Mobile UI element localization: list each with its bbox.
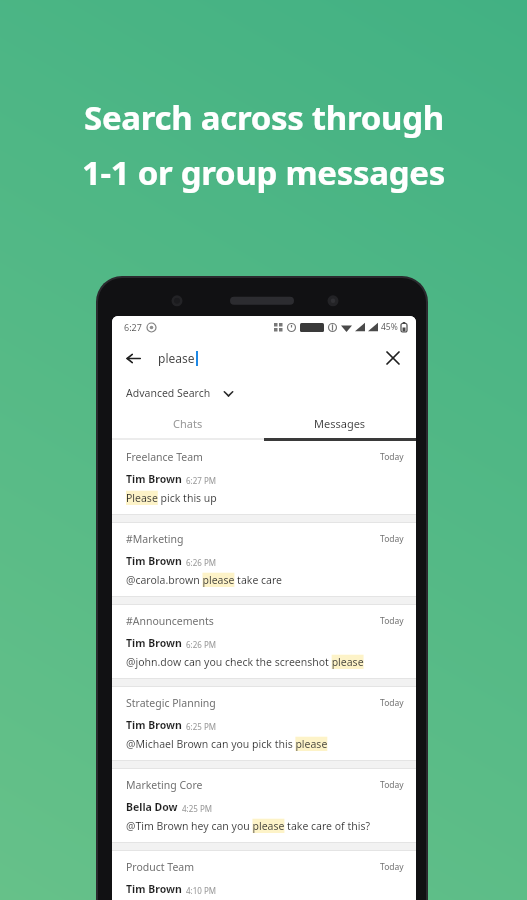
staticText: #Announcements	[126, 614, 214, 628]
staticText: Tim Brown	[126, 554, 182, 568]
staticText: Bella Dow	[126, 800, 178, 814]
staticText: Advanced Search	[126, 386, 211, 400]
button[interactable]: Product Team	[112, 851, 416, 900]
button[interactable]: Chats	[112, 408, 264, 438]
button[interactable]: #Announcements	[112, 605, 416, 678]
staticText: Today	[380, 615, 404, 627]
button[interactable]: Clear search	[378, 343, 408, 373]
staticText: Today	[380, 861, 404, 873]
button[interactable]: Freelance Team	[112, 441, 416, 514]
staticText: @carola.brown please take care	[126, 573, 283, 587]
staticText: 6:26 PM	[186, 639, 217, 650]
staticText: Today	[380, 697, 404, 709]
staticText: Marketing Core	[126, 778, 203, 792]
staticText: Please pick this up	[126, 491, 217, 505]
button[interactable]: Messages	[264, 408, 416, 438]
button[interactable]: Back	[118, 343, 148, 373]
staticText: @Michael Brown can you pick this please	[126, 737, 328, 751]
button[interactable]: Marketing Core	[112, 769, 416, 842]
staticText: Freelance Team	[126, 450, 203, 464]
staticText: 1-1 or group messages	[82, 150, 445, 195]
staticText: Chats	[173, 416, 203, 431]
staticText: 6:25 PM	[186, 721, 217, 732]
staticText: please	[158, 350, 195, 366]
staticText: 6:26 PM	[186, 557, 217, 568]
staticText: Today	[380, 451, 404, 463]
staticText: Strategic Planning	[126, 696, 216, 710]
staticText: Search across through	[84, 95, 444, 140]
staticText: 4:10 PM	[186, 885, 217, 896]
staticText: 6:27 PM	[186, 475, 217, 486]
staticText: Today	[380, 779, 404, 791]
staticText: @Tim Brown hey can you please take care …	[126, 819, 371, 833]
staticText: @john.dow can you check the screenshot p…	[126, 655, 364, 669]
staticText: Messages	[314, 416, 366, 431]
staticText: 45%	[381, 321, 398, 333]
staticText: Today	[380, 533, 404, 545]
button[interactable]: Strategic Planning	[112, 687, 416, 760]
staticText: 4:25 PM	[182, 803, 213, 814]
staticText: Tim Brown	[126, 718, 182, 732]
staticText: Product Team	[126, 860, 195, 874]
button[interactable]: Advanced Search	[112, 378, 416, 408]
staticText: Tim Brown	[126, 882, 182, 896]
staticText: Tim Brown	[126, 636, 182, 650]
staticText: #Marketing	[126, 532, 184, 546]
staticText: Tim Brown	[126, 472, 182, 486]
staticText: 6:27	[124, 321, 142, 333]
button[interactable]: #Marketing	[112, 523, 416, 596]
